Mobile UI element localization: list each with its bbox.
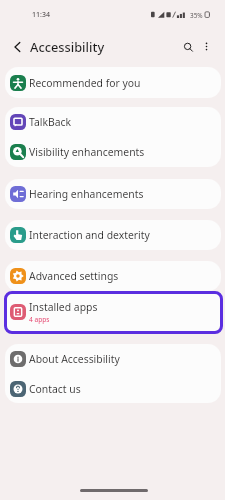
- button[interactable]: Search: [178, 37, 199, 58]
- button[interactable]: Recommended for you: [5, 67, 221, 98]
- staticText: 4 apps: [29, 315, 50, 324]
- button[interactable]: TalkBack: [5, 107, 221, 137]
- button[interactable]: Back: [5, 35, 28, 58]
- staticText: Recommended for you: [29, 76, 141, 90]
- button[interactable]: Installed apps: [5, 291, 221, 333]
- button[interactable]: Interaction and dexterity: [5, 220, 221, 250]
- staticText: Visibility enhancements: [29, 145, 145, 159]
- staticText: Installed apps: [29, 300, 98, 314]
- staticText: About Accessibility: [29, 352, 120, 366]
- staticText: TalkBack: [29, 115, 72, 129]
- button[interactable]: More options: [196, 36, 216, 56]
- staticText: Advanced settings: [29, 269, 119, 283]
- staticText: 35%: [190, 11, 203, 20]
- button[interactable]: [4, 291, 223, 334]
- button[interactable]: About Accessibility: [5, 344, 221, 374]
- button[interactable]: Advanced settings: [5, 261, 221, 291]
- button[interactable]: Hearing enhancements: [5, 179, 221, 209]
- button[interactable]: Contact us: [5, 374, 221, 403]
- staticText: 11:34: [32, 10, 50, 20]
- staticText: Interaction and dexterity: [29, 228, 150, 242]
- staticText: Hearing enhancements: [29, 187, 144, 201]
- staticText: Accessibility: [30, 38, 105, 55]
- staticText: Contact us: [29, 382, 81, 396]
- button[interactable]: Visibility enhancements: [5, 137, 221, 167]
